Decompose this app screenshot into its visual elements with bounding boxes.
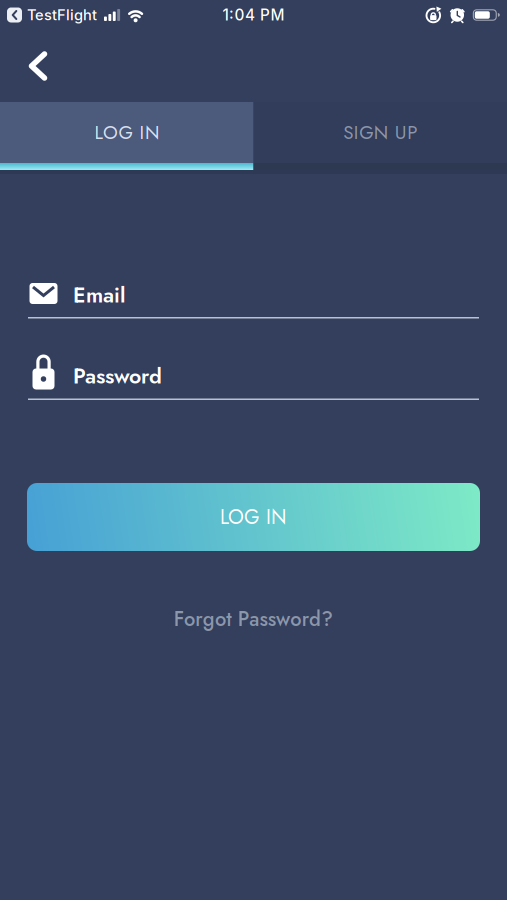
staticText: Password <box>73 361 162 391</box>
staticText: SIGN UP <box>343 119 417 146</box>
staticText: 1:04 PM <box>222 6 284 24</box>
staticText: LOG IN <box>220 503 287 531</box>
staticText: Email <box>73 280 126 310</box>
staticText: TestFlight <box>27 6 97 24</box>
staticText: Forgot Password? <box>174 605 333 633</box>
staticText: LOG IN <box>94 119 159 146</box>
